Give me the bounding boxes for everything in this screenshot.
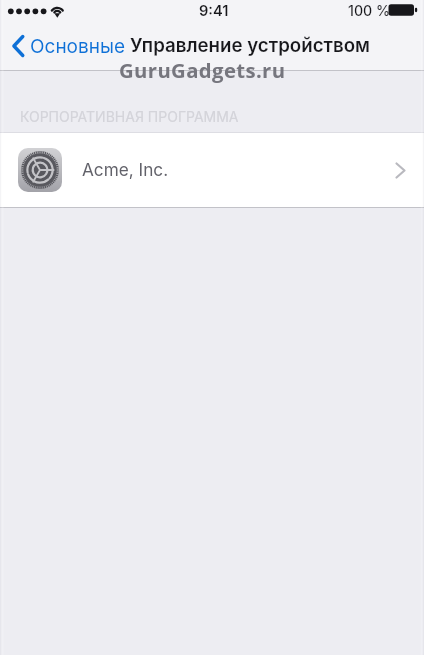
staticText: КОРПОРАТИВНАЯ ПРОГРАММА — [20, 108, 239, 125]
button[interactable]: Acme, Inc. — [0, 133, 424, 207]
staticText: Acme, Inc. — [82, 159, 169, 180]
staticText: 100 % — [348, 2, 391, 19]
other: Назад — [11, 34, 25, 58]
staticText: GuruGadgets.ru — [119, 56, 286, 84]
button[interactable]: Назад — [8, 26, 131, 66]
staticText: Основные — [30, 35, 126, 58]
staticText: 9:41 — [199, 2, 229, 20]
staticText: Управление устройством — [130, 34, 370, 57]
